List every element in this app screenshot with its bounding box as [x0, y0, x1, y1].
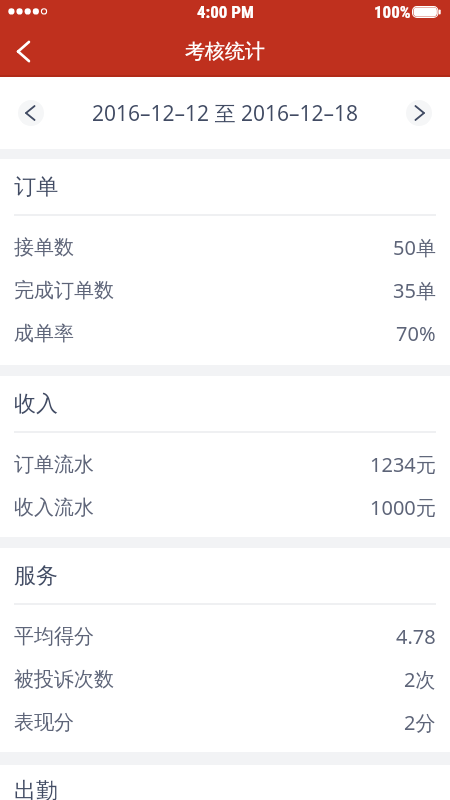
staticText: 接单数: [14, 235, 74, 260]
button[interactable]: 订单流水: [0, 443, 450, 486]
staticText: 表现分: [14, 710, 74, 735]
button[interactable]: 平均得分: [0, 615, 450, 658]
staticText: 成单率: [14, 321, 74, 346]
staticText: 50单: [393, 234, 436, 261]
button[interactable]: 收入流水: [0, 486, 450, 529]
staticText: 70%: [396, 320, 436, 347]
button[interactable]: 表现分: [0, 701, 450, 744]
staticText: 收入: [14, 390, 58, 418]
staticText: 2016–12–12 至 2016–12–18: [92, 99, 359, 128]
staticText: 服务: [14, 562, 58, 590]
staticText: 35单: [393, 277, 436, 304]
staticText: 收入流水: [14, 495, 94, 520]
button[interactable]: 成单率: [0, 312, 450, 355]
staticText: 2分: [404, 709, 436, 736]
button[interactable]: Previous week: [18, 100, 44, 126]
button[interactable]: Next week: [406, 100, 432, 126]
staticText: 出勤: [14, 777, 58, 800]
staticText: 1000元: [370, 494, 436, 521]
staticText: 订单流水: [14, 452, 94, 477]
staticText: 平均得分: [14, 624, 94, 649]
staticText: 100%: [374, 2, 411, 22]
staticText: 4.78: [396, 623, 436, 650]
button[interactable]: Back: [0, 25, 50, 75]
button[interactable]: 接单数: [0, 226, 450, 269]
staticText: 1234元: [370, 451, 436, 478]
button[interactable]: 完成订单数: [0, 269, 450, 312]
staticText: 考核统计: [185, 39, 265, 64]
staticText: 4:00 PM: [197, 2, 254, 22]
staticText: 订单: [14, 173, 58, 201]
staticText: 完成订单数: [14, 278, 114, 303]
staticText: 被投诉次数: [14, 667, 114, 692]
staticText: 2次: [404, 666, 436, 693]
button[interactable]: 被投诉次数: [0, 658, 450, 701]
